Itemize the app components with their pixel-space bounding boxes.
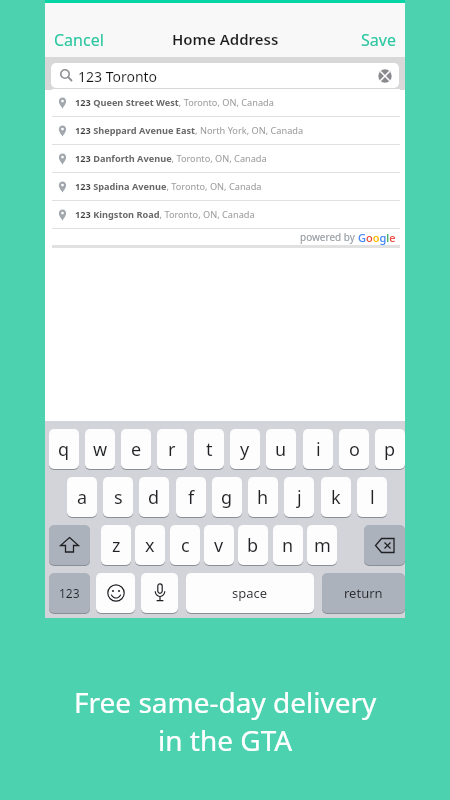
staticText: i <box>316 437 321 462</box>
staticText: space <box>232 584 268 602</box>
staticText: Free same-day delivery <box>74 683 377 721</box>
button[interactable]: t <box>194 429 224 469</box>
staticText: k <box>331 485 341 510</box>
button[interactable]: n <box>273 525 303 565</box>
staticText: Home Address <box>172 29 279 49</box>
staticText: d <box>148 485 160 510</box>
button[interactable]: e <box>121 429 151 469</box>
button[interactable]: k <box>321 477 351 517</box>
staticText: 123 Queen Street West, Toronto, ON, Cana… <box>75 96 274 109</box>
button[interactable]: q <box>49 429 79 469</box>
button[interactable]: o <box>339 429 369 469</box>
staticText: q <box>58 437 70 462</box>
staticText: z <box>112 533 121 558</box>
staticText: g <box>221 485 233 510</box>
staticText: 123 Toronto <box>78 67 158 86</box>
staticText: 123 Sheppard Avenue East, North York, ON… <box>75 124 304 137</box>
button[interactable]: z <box>101 525 131 565</box>
staticText: o <box>349 437 360 462</box>
staticText: b <box>247 533 259 558</box>
staticText: t <box>206 437 213 462</box>
staticText: n <box>282 533 294 558</box>
button[interactable]: y <box>230 429 260 469</box>
button[interactable]: h <box>248 477 278 517</box>
button[interactable]: Cancel <box>54 29 104 51</box>
staticText: v <box>214 533 224 558</box>
button[interactable] <box>364 525 405 565</box>
staticText: y <box>240 437 250 462</box>
staticText: x <box>145 533 155 558</box>
button[interactable]: u <box>266 429 296 469</box>
button[interactable]: 123 Toronto <box>51 63 399 88</box>
staticText: p <box>384 437 396 462</box>
button[interactable] <box>141 573 178 613</box>
staticText: 123 <box>59 585 80 601</box>
button[interactable]: i <box>303 429 333 469</box>
button[interactable]: 123 Kingston Road, Toronto, ON, Canada <box>52 201 400 228</box>
button[interactable]: a <box>67 477 97 517</box>
staticText: l <box>370 485 375 510</box>
button[interactable]: s <box>103 477 133 517</box>
staticText: h <box>257 485 269 510</box>
staticText: m <box>314 533 331 558</box>
staticText: 123 Kingston Road, Toronto, ON, Canada <box>75 208 255 221</box>
button[interactable]: f <box>176 477 206 517</box>
button[interactable]: 123 <box>49 573 90 613</box>
staticText: r <box>168 437 176 462</box>
button[interactable]: l <box>357 477 387 517</box>
button[interactable]: p <box>375 429 405 469</box>
button[interactable]: m <box>307 525 337 565</box>
staticText: w <box>93 437 108 462</box>
staticText: u <box>275 437 287 462</box>
button[interactable] <box>96 573 135 613</box>
button[interactable]: d <box>139 477 169 517</box>
staticText: 123 Spadina Avenue, Toronto, ON, Canada <box>75 180 262 193</box>
button[interactable]: 123 Queen Street West, Toronto, ON, Cana… <box>52 89 400 116</box>
staticText: Google <box>358 230 396 245</box>
button[interactable] <box>49 525 90 565</box>
button[interactable]: x <box>135 525 165 565</box>
staticText: s <box>114 485 123 510</box>
button[interactable]: w <box>85 429 115 469</box>
button[interactable]: g <box>212 477 242 517</box>
button[interactable]: c <box>170 525 200 565</box>
button[interactable]: j <box>284 477 314 517</box>
staticText: 123 Danforth Avenue, Toronto, ON, Canada <box>75 152 267 165</box>
staticText: c <box>181 533 190 558</box>
staticText: a <box>77 485 88 510</box>
button[interactable]: space <box>186 573 314 613</box>
button[interactable]: return <box>322 573 405 613</box>
staticText: e <box>131 437 142 462</box>
button[interactable]: b <box>238 525 268 565</box>
staticText: f <box>188 485 195 510</box>
button[interactable]: Save <box>361 29 396 51</box>
button[interactable]: 123 Sheppard Avenue East, North York, ON… <box>52 117 400 144</box>
button[interactable]: 123 Danforth Avenue, Toronto, ON, Canada <box>52 145 400 172</box>
button[interactable]: v <box>204 525 234 565</box>
staticText: return <box>344 584 383 602</box>
staticText: powered by <box>300 230 358 244</box>
staticText: in the GTA <box>158 721 293 759</box>
button[interactable]: 123 Spadina Avenue, Toronto, ON, Canada <box>52 173 400 200</box>
button[interactable]: r <box>157 429 187 469</box>
staticText: j <box>297 485 302 510</box>
